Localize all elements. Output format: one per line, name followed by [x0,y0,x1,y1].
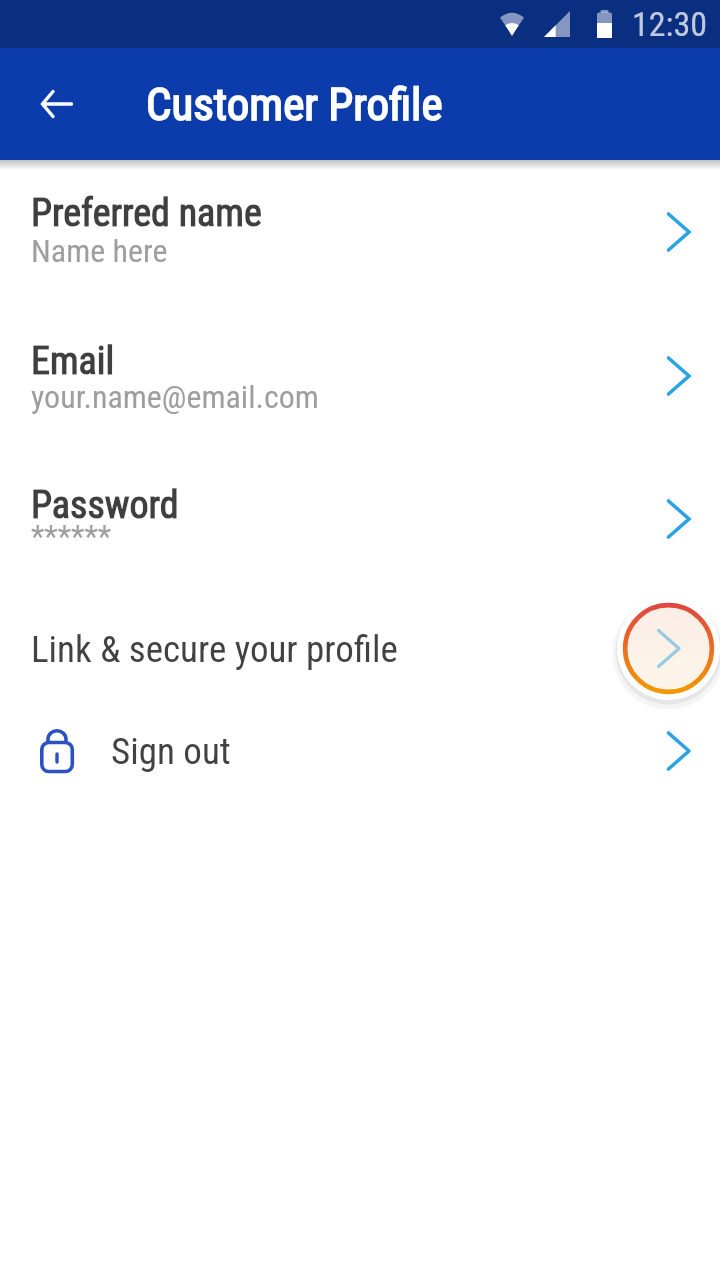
button[interactable]: Password [0,472,720,576]
staticText: 12:30 [632,4,708,44]
staticText: Password [31,483,179,528]
staticText: Sign out [111,730,231,773]
staticText: Customer Profile [146,78,443,131]
button[interactable] [40,87,74,121]
staticText: Name here [31,232,168,270]
staticText: Preferred name [31,191,262,236]
staticText: ****** [31,518,112,554]
staticText: your.name@email.com [31,378,319,416]
button[interactable]: Sign out [0,706,720,796]
button[interactable]: Preferred name [0,180,720,284]
button[interactable]: Email [0,328,720,432]
button[interactable]: Link & secure your profile [0,600,720,698]
staticText: Link & secure your profile [31,628,398,671]
staticText: Email [31,339,115,384]
